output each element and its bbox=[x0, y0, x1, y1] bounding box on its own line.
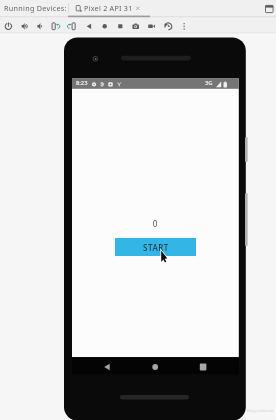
staticText: 0 bbox=[145, 218, 165, 229]
staticText: START bbox=[143, 242, 169, 253]
button[interactable]: Pixel 2 API 31 bbox=[84, 3, 133, 13]
staticText: blog.csdn.net bbox=[247, 408, 274, 414]
button[interactable]: START bbox=[115, 238, 196, 256]
staticText: Running Devices: bbox=[4, 3, 67, 13]
staticText: 3G bbox=[205, 79, 213, 87]
staticText: 8:23 bbox=[76, 79, 88, 87]
